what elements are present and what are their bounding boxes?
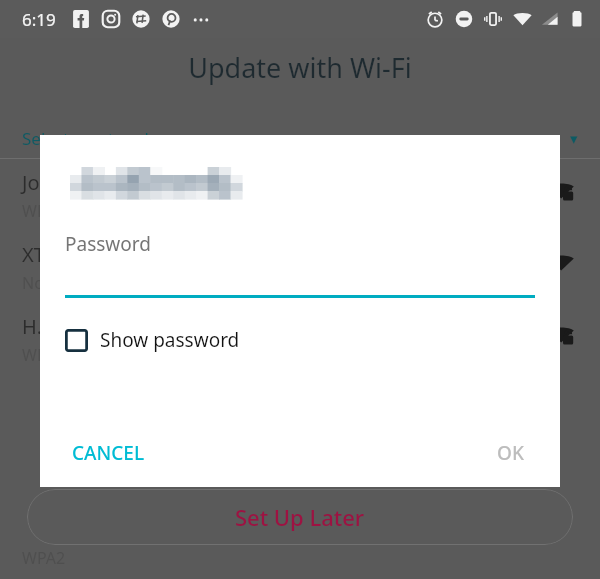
staticText: OK: [497, 440, 524, 466]
button[interactable]: Jo...: [0, 159, 600, 231]
staticText: Update with Wi-Fi: [188, 49, 412, 86]
button[interactable]: XT...: [0, 231, 600, 303]
button[interactable]: Select a network: [0, 118, 600, 158]
other: Open network: [548, 252, 578, 282]
button[interactable]: CANCEL: [62, 432, 155, 474]
staticText: WPA2: [22, 344, 66, 366]
staticText: Select a network: [22, 127, 154, 150]
staticText: None: [22, 272, 63, 294]
button[interactable]: Set Up Later: [27, 489, 573, 545]
staticText: CANCEL: [72, 440, 145, 466]
other: Secured network: [548, 180, 578, 210]
staticText: XT...: [22, 241, 60, 268]
staticText: Password: [65, 231, 151, 257]
staticText: 6:19: [22, 8, 56, 31]
staticText: Jo...: [22, 169, 56, 196]
button[interactable]: OK: [487, 432, 534, 474]
button[interactable]: H...: [0, 303, 600, 375]
staticText: H...: [22, 313, 53, 340]
staticText: ▾: [570, 130, 578, 147]
other: Secured network: [548, 324, 578, 354]
button[interactable]: Show password: [65, 320, 240, 360]
staticText: Set Up Later: [235, 502, 365, 532]
staticText: WPA2: [22, 547, 66, 569]
staticText: Show password: [100, 327, 240, 353]
staticText: WPA2: [22, 200, 66, 222]
